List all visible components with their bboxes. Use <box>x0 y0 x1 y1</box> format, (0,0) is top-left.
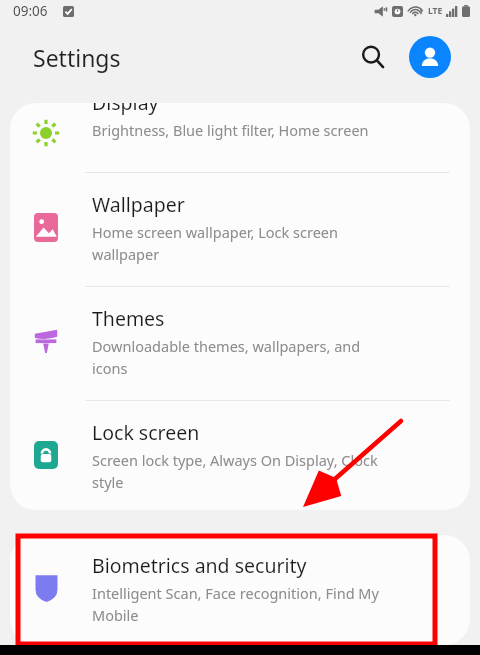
staticText: Home screen wallpaper, Lock screen <box>92 222 338 242</box>
staticText: Intelligent Scan, Face recognition, Find… <box>92 583 379 603</box>
button[interactable] <box>10 421 470 510</box>
staticText: LTE <box>428 5 443 17</box>
staticText: Downloadable themes, wallpapers, and <box>92 336 361 356</box>
staticText: 09:06 <box>13 2 48 20</box>
button[interactable]: Search <box>351 35 395 79</box>
staticText: Settings <box>33 42 121 73</box>
staticText: Biometrics and security <box>92 552 307 579</box>
staticText: Lock screen <box>92 419 200 446</box>
button[interactable]: Biometrics and security <box>10 535 470 645</box>
staticText: style <box>92 472 124 492</box>
staticText: icons <box>92 358 128 378</box>
button[interactable] <box>10 193 470 288</box>
staticText: Mobile <box>92 605 139 625</box>
button[interactable]: Account <box>409 36 451 78</box>
staticText: Themes <box>92 305 165 332</box>
button[interactable] <box>10 307 470 402</box>
staticText: wallpaper <box>92 244 160 264</box>
staticText: Brightness, Blue light filter, Home scre… <box>92 120 369 140</box>
staticText: Display <box>92 103 159 116</box>
button[interactable] <box>10 103 470 159</box>
staticText: Screen lock type, Always On Display, Clo… <box>92 450 378 470</box>
staticText: Wallpaper <box>92 191 185 218</box>
